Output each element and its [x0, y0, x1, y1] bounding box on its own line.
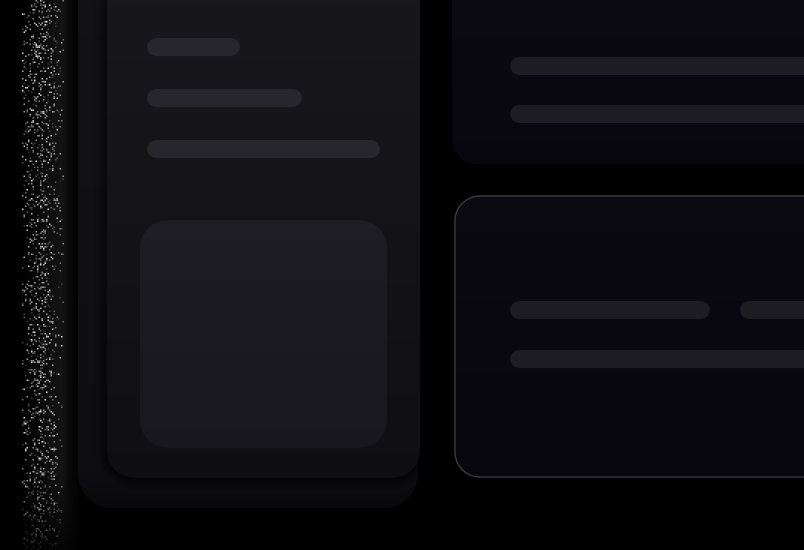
- button[interactable]: Summary card: [452, 0, 804, 164]
- button[interactable]: Details card: [455, 196, 804, 477]
- button[interactable]: Loading content card: [107, 0, 418, 478]
